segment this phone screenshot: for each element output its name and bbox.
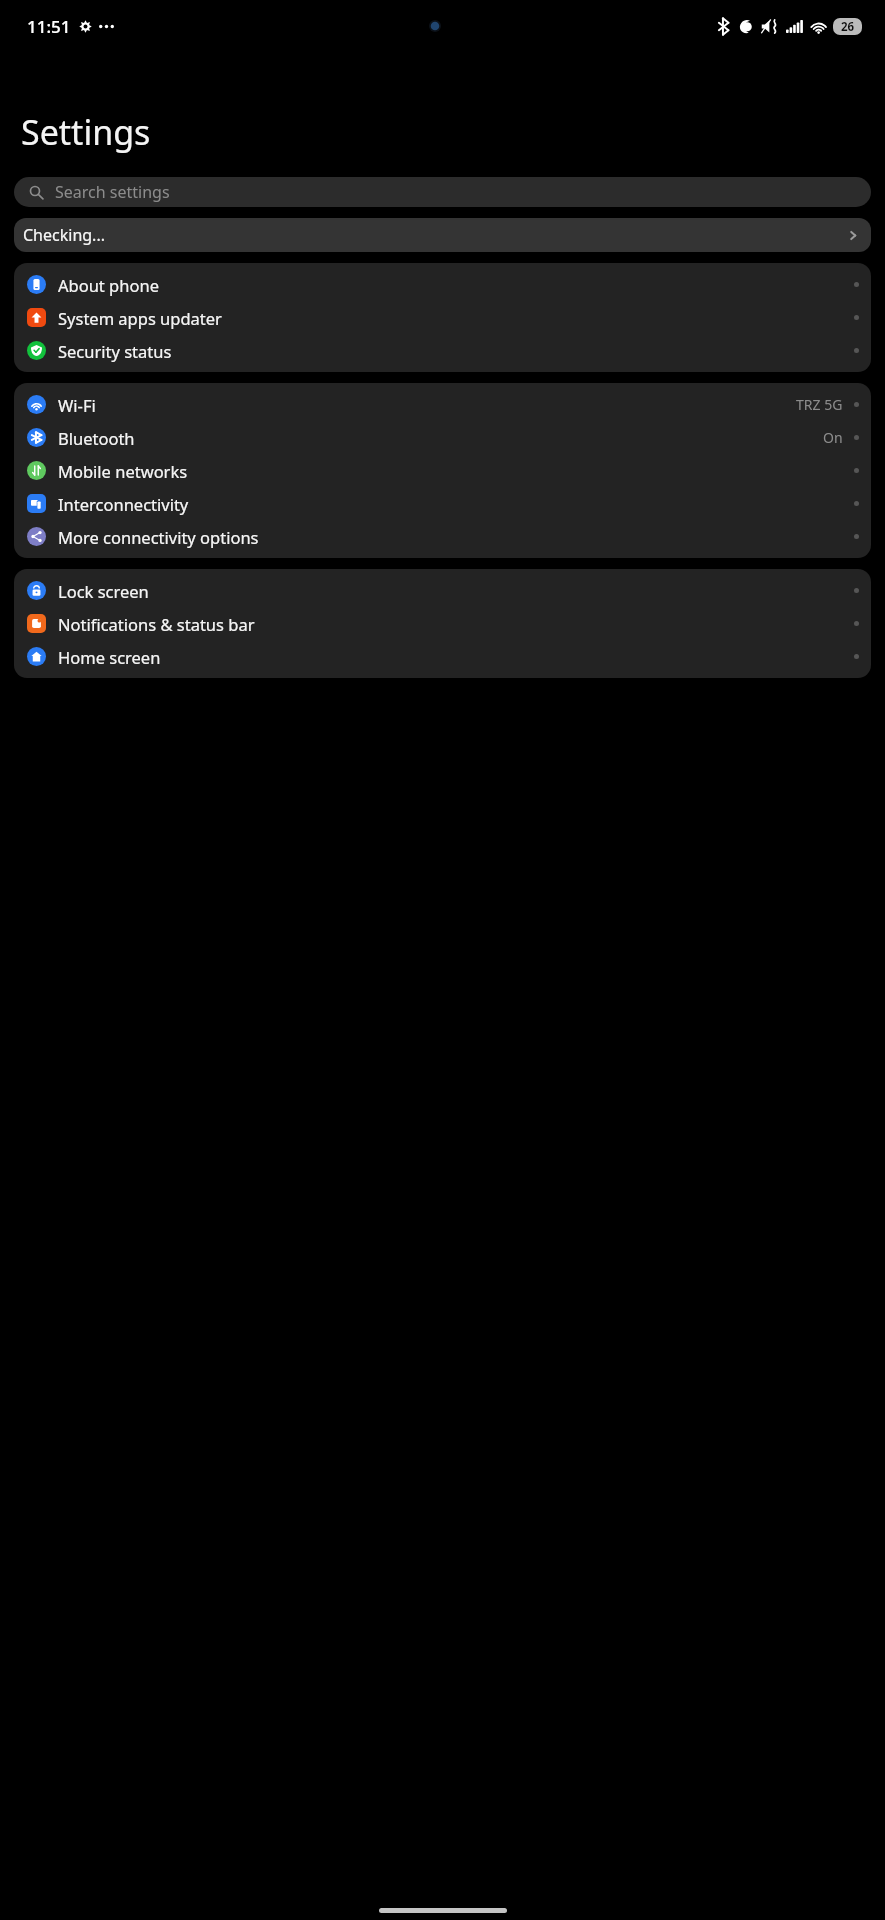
button[interactable]: Checking...	[14, 218, 871, 252]
button[interactable]: Notifications & status bar	[14, 607, 871, 640]
staticText: On	[823, 428, 843, 447]
button[interactable]: Bluetooth	[14, 421, 871, 454]
button[interactable]: About phone	[14, 268, 871, 301]
staticText: About phone	[58, 274, 854, 296]
staticText: 11:51	[27, 15, 71, 38]
staticText: Mobile networks	[58, 460, 854, 482]
staticText: Wi-Fi	[58, 394, 796, 416]
button[interactable]: Home screen	[14, 640, 871, 673]
staticText: 26	[841, 19, 855, 35]
button[interactable]: Lock screen	[14, 574, 871, 607]
staticText: Bluetooth	[58, 427, 823, 449]
staticText: More connectivity options	[58, 526, 854, 548]
button[interactable]: Search settings	[14, 177, 871, 207]
button[interactable]: Security status	[14, 334, 871, 367]
staticText: TRZ 5G	[796, 395, 843, 414]
other: Open	[846, 228, 861, 243]
staticText: Search settings	[55, 181, 170, 203]
staticText: Checking...	[23, 224, 846, 246]
staticText: Security status	[58, 340, 854, 362]
staticText: Home screen	[58, 646, 854, 668]
staticText: System apps updater	[58, 307, 854, 329]
button[interactable]: More connectivity options	[14, 520, 871, 553]
button[interactable]: Mobile networks	[14, 454, 871, 487]
staticText: Settings	[21, 109, 151, 155]
staticText: Lock screen	[58, 580, 854, 602]
button[interactable]: System apps updater	[14, 301, 871, 334]
button[interactable]: Interconnectivity	[14, 487, 871, 520]
staticText: Interconnectivity	[58, 493, 854, 515]
staticText: Notifications & status bar	[58, 613, 854, 635]
button[interactable]: Wi-Fi	[14, 388, 871, 421]
